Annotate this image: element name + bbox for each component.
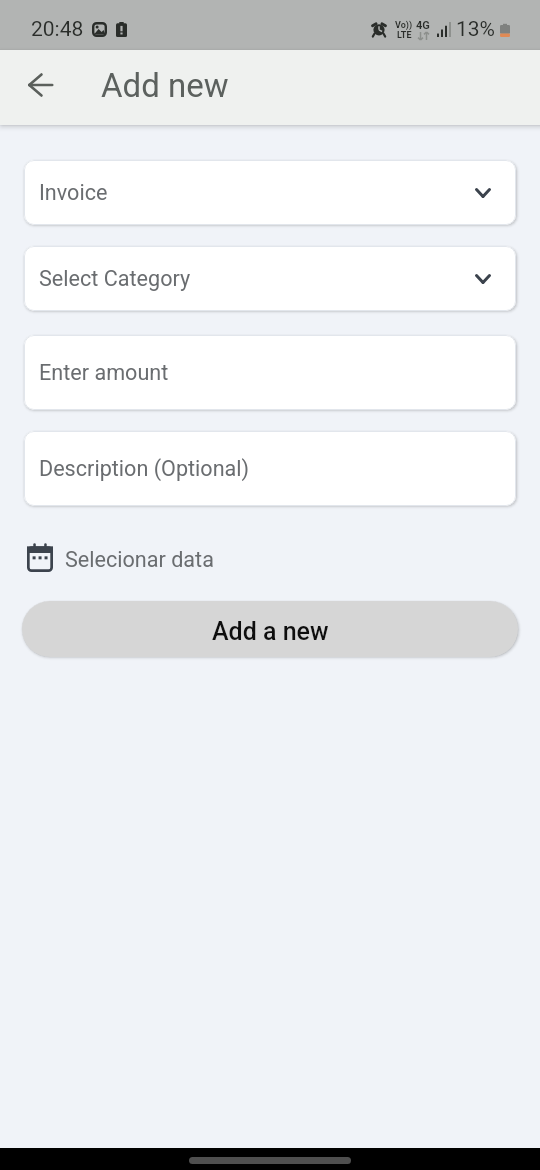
staticText: Vo)): [395, 20, 413, 31]
staticText: Add new: [101, 66, 229, 105]
button[interactable]: Enter amount: [24, 335, 516, 410]
staticText: 4G: [416, 19, 430, 32]
staticText: 20:48: [31, 17, 84, 42]
staticText: Description (Optional): [39, 456, 250, 481]
button[interactable]: Add a new: [22, 601, 518, 657]
staticText: Select Category: [39, 266, 191, 291]
staticText: Enter amount: [39, 360, 169, 385]
button[interactable]: Description (Optional): [24, 431, 516, 506]
staticText: 13%: [456, 17, 495, 42]
button[interactable]: Selecionar data: [27, 543, 214, 573]
button[interactable]: Back: [14, 60, 64, 110]
staticText: Add a new: [212, 617, 329, 646]
staticText: LTE: [397, 30, 412, 41]
staticText: Invoice: [39, 180, 108, 205]
staticText: Selecionar data: [65, 547, 214, 572]
button[interactable]: Select Category: [24, 246, 516, 311]
button[interactable]: Invoice: [24, 160, 516, 225]
